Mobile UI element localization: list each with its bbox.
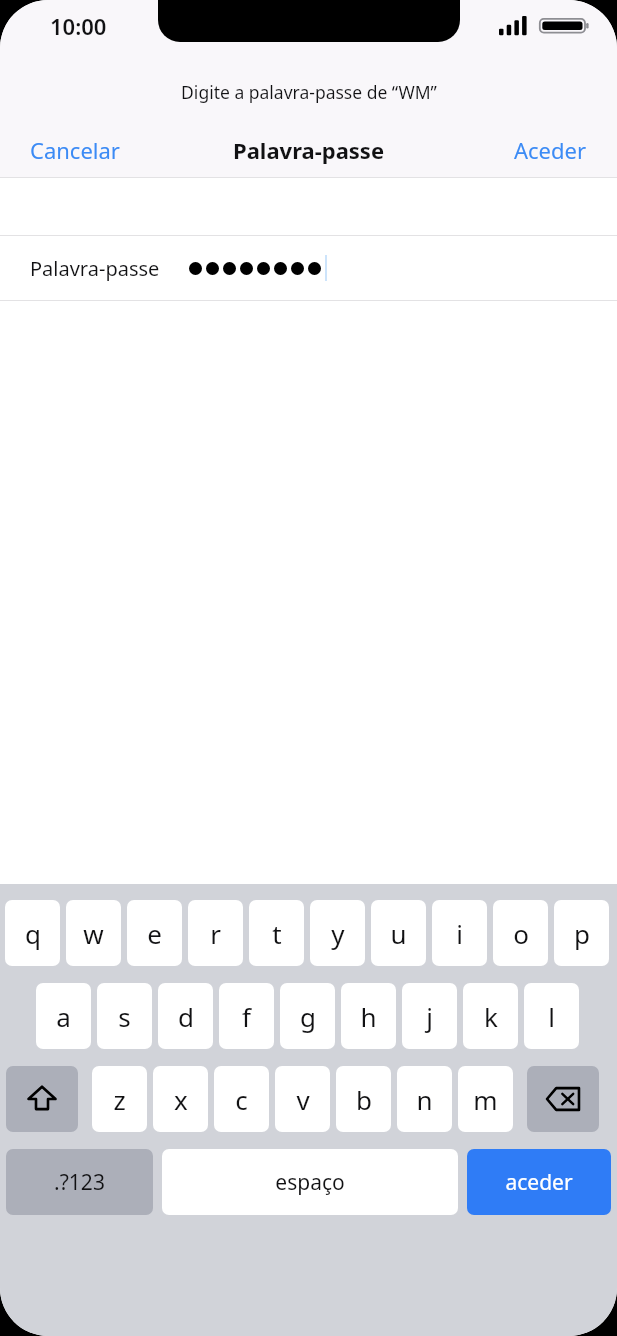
staticText: v <box>296 1082 310 1117</box>
button[interactable]: g <box>280 983 335 1049</box>
staticText: e <box>147 916 162 951</box>
button[interactable]: .?123 <box>6 1149 153 1215</box>
button[interactable]: e <box>127 900 182 966</box>
button[interactable]: b <box>336 1066 391 1132</box>
button[interactable]: Cancelar <box>0 127 150 173</box>
staticText: q <box>25 916 41 951</box>
button[interactable]: s <box>97 983 152 1049</box>
staticText: g <box>300 999 316 1034</box>
staticText: t <box>272 916 282 951</box>
staticText: b <box>356 1082 372 1117</box>
button[interactable]: Backspace <box>527 1066 599 1132</box>
staticText: x <box>174 1082 188 1117</box>
staticText: aceder <box>505 1168 573 1197</box>
button[interactable]: d <box>158 983 213 1049</box>
staticText: h <box>360 999 377 1034</box>
button[interactable]: aceder <box>467 1149 611 1215</box>
staticText: Aceder <box>514 135 587 165</box>
button[interactable]: j <box>402 983 457 1049</box>
staticText: f <box>242 999 251 1034</box>
staticText: w <box>83 916 104 951</box>
button[interactable]: q <box>5 900 60 966</box>
staticText: Palavra-passe <box>233 135 385 165</box>
button[interactable]: y <box>310 900 365 966</box>
button[interactable]: Shift <box>6 1066 78 1132</box>
staticText: c <box>235 1082 248 1117</box>
button[interactable]: Palavra-passe <box>0 236 617 300</box>
button[interactable]: l <box>524 983 579 1049</box>
staticText: Digite a palavra-passe de “WM” <box>181 80 437 104</box>
button[interactable]: o <box>493 900 548 966</box>
staticText: Cancelar <box>30 135 120 165</box>
button[interactable]: v <box>275 1066 330 1132</box>
staticText: d <box>178 999 194 1034</box>
staticText: j <box>426 999 433 1034</box>
button[interactable]: i <box>432 900 487 966</box>
button[interactable]: w <box>66 900 121 966</box>
staticText: i <box>456 916 463 951</box>
button[interactable]: z <box>92 1066 147 1132</box>
button[interactable]: r <box>188 900 243 966</box>
button[interactable]: k <box>463 983 518 1049</box>
button[interactable]: f <box>219 983 274 1049</box>
button[interactable]: p <box>554 900 609 966</box>
staticText: z <box>113 1082 126 1117</box>
staticText: y <box>331 916 345 951</box>
staticText: .?123 <box>54 1168 105 1197</box>
staticText: k <box>484 999 498 1034</box>
button[interactable]: t <box>249 900 304 966</box>
staticText: u <box>390 916 407 951</box>
staticText: r <box>210 916 221 951</box>
staticText: 10:00 <box>50 11 107 41</box>
staticText: a <box>56 999 71 1034</box>
staticText: s <box>118 999 131 1034</box>
staticText: Palavra-passe <box>30 255 160 282</box>
button[interactable]: n <box>397 1066 452 1132</box>
staticText: m <box>473 1082 498 1117</box>
staticText: o <box>513 916 529 951</box>
staticText: n <box>416 1082 433 1117</box>
button[interactable]: x <box>153 1066 208 1132</box>
button[interactable]: m <box>458 1066 513 1132</box>
button[interactable]: espaço <box>162 1149 458 1215</box>
button[interactable]: u <box>371 900 426 966</box>
button[interactable]: h <box>341 983 396 1049</box>
staticText: l <box>548 999 555 1034</box>
button[interactable]: Aceder <box>484 127 617 173</box>
staticText: p <box>574 916 590 951</box>
staticText: espaço <box>275 1168 345 1197</box>
button[interactable]: c <box>214 1066 269 1132</box>
button[interactable]: a <box>36 983 91 1049</box>
